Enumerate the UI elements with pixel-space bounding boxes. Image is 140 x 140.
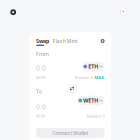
button[interactable]: Home	[9, 8, 18, 17]
staticText: 0.0	[36, 103, 46, 111]
staticText: To	[36, 88, 42, 95]
staticText: Flash Mint	[52, 37, 77, 45]
staticText: Connect Wallet	[52, 129, 88, 137]
staticText: MAX	[94, 75, 104, 80]
staticText: $0.00	[36, 113, 45, 119]
button[interactable]: MAX	[94, 75, 104, 80]
button[interactable]: Flash Mint	[49, 37, 77, 45]
button[interactable]: Swap	[36, 37, 49, 45]
staticText: Balance: 0	[75, 75, 93, 80]
staticText: ETH	[88, 63, 98, 70]
staticText: WETH	[83, 97, 98, 104]
button[interactable]: Connect Wallet	[36, 128, 104, 138]
staticText: Swap	[36, 37, 49, 45]
staticText: $0.00	[36, 75, 45, 80]
button[interactable]: Settings	[100, 38, 105, 43]
staticText: Balance: 0	[86, 113, 104, 119]
button[interactable]: WETH	[77, 96, 104, 105]
staticText: From	[36, 50, 49, 58]
button[interactable]: Swap direction	[67, 83, 77, 93]
button[interactable]: Connect wallet	[119, 6, 128, 16]
button[interactable]: ETH	[82, 62, 104, 71]
staticText: 0.0	[36, 64, 46, 72]
